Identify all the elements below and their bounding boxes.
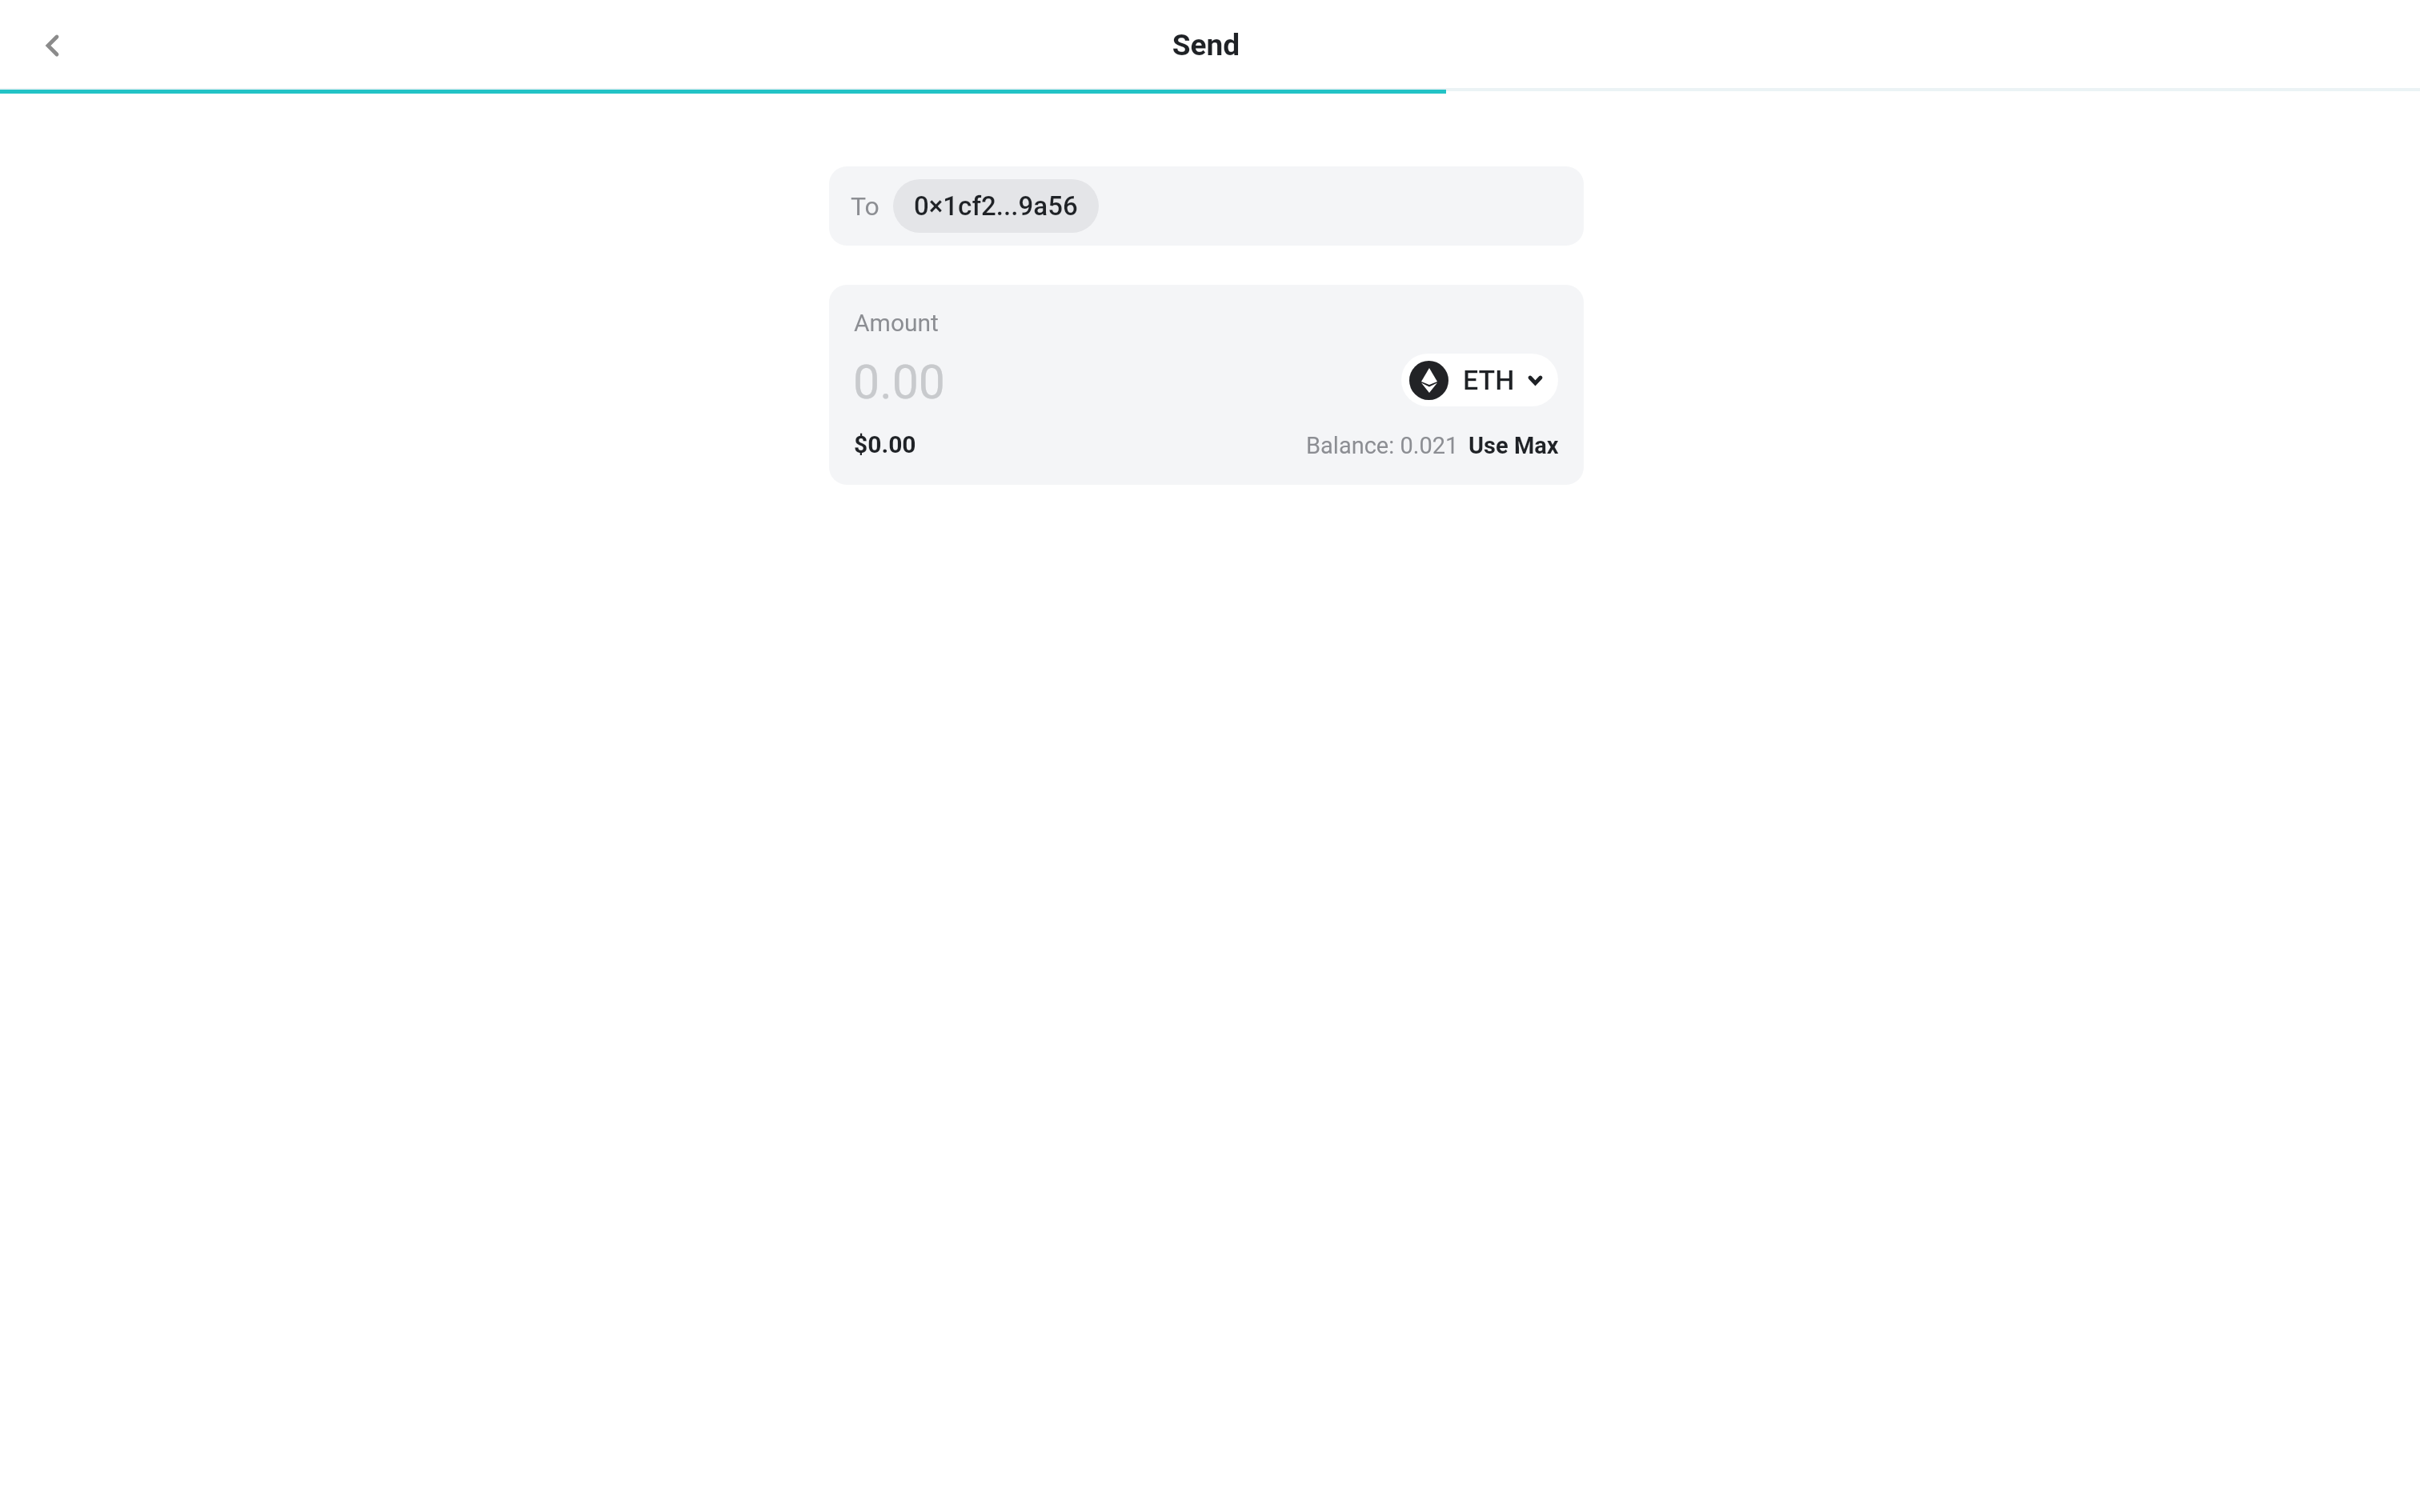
button[interactable]: Use Max (1468, 432, 1559, 459)
button[interactable]: ETH (1401, 354, 1558, 406)
staticText: 0×1cf2...9a56 (914, 190, 1078, 222)
staticText: Send (0, 28, 2416, 62)
staticText: To (851, 191, 879, 222)
staticText: 0.00 (853, 354, 946, 410)
staticText: ETH (1463, 364, 1515, 396)
button[interactable]: 0×1cf2...9a56 (893, 179, 1099, 233)
staticText: Amount (854, 309, 939, 337)
staticText: Use Max (1468, 432, 1559, 459)
button[interactable]: Back (29, 22, 75, 69)
button[interactable]: To (829, 166, 1584, 246)
staticText: $0.00 (854, 430, 916, 458)
button[interactable]: 0.00 (851, 352, 944, 407)
staticText: Balance: 0.021 (1306, 432, 1459, 459)
